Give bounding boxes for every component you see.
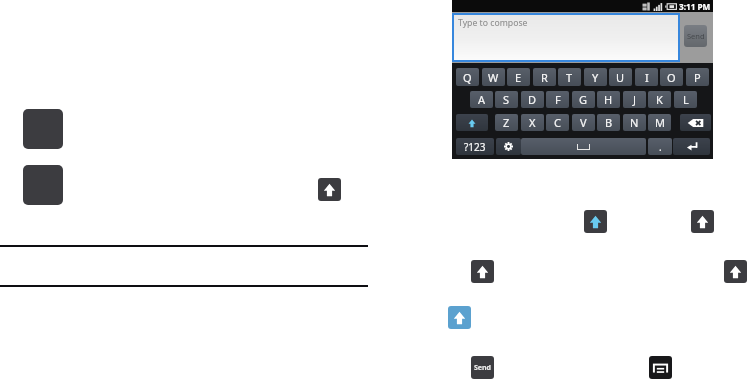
button[interactable]: Shift caps lock [448, 306, 471, 329]
staticText: U [616, 70, 625, 85]
button[interactable]: Show keyboard [649, 356, 672, 379]
staticText: Y [592, 70, 599, 85]
staticText: Send [687, 31, 705, 41]
staticText: G [579, 92, 588, 107]
staticText: C [554, 115, 561, 130]
button[interactable]: I [635, 68, 658, 86]
staticText: Send [474, 363, 492, 373]
staticText: . [659, 140, 662, 154]
button[interactable]: S [495, 91, 518, 108]
staticText: ?123 [464, 140, 486, 154]
button[interactable]: H [597, 91, 620, 108]
staticText: A [478, 92, 486, 107]
staticText: W [488, 70, 499, 85]
button[interactable]: K [648, 91, 671, 108]
button[interactable]: ?123 [456, 138, 494, 155]
staticText: J [633, 92, 637, 107]
button[interactable]: G [572, 91, 595, 108]
button[interactable]: E [507, 68, 530, 86]
button[interactable]: N [623, 114, 646, 131]
button[interactable]: T [558, 68, 581, 86]
button[interactable]: Send [471, 356, 494, 379]
button[interactable]: M [648, 114, 671, 131]
button[interactable]: Z [495, 114, 518, 131]
staticText: N [630, 115, 639, 130]
staticText: M [655, 115, 665, 130]
staticText: I [645, 70, 649, 85]
button[interactable]: Key background pressed [23, 165, 63, 205]
staticText: S [503, 92, 510, 107]
staticText: B [605, 115, 613, 130]
button[interactable]: Type to compose [454, 15, 678, 60]
button[interactable]: X [521, 114, 544, 131]
staticText: D [528, 92, 537, 107]
button[interactable]: Send [684, 25, 707, 47]
button[interactable]: W [482, 68, 505, 86]
staticText: F [555, 92, 561, 107]
button[interactable]: Input settings [496, 138, 521, 155]
staticText: X [529, 115, 536, 130]
staticText: Type to compose [458, 17, 528, 29]
button[interactable]: J [623, 91, 646, 108]
button[interactable]: F [546, 91, 569, 108]
button[interactable]: V [572, 114, 595, 131]
staticText: R [541, 70, 548, 85]
button[interactable]: Q [456, 68, 479, 86]
staticText: V [580, 115, 587, 130]
button[interactable]: A [470, 91, 493, 108]
button[interactable]: Space [521, 138, 646, 155]
staticText: 3:11 PM [679, 1, 711, 12]
button[interactable]: . [648, 138, 672, 155]
button[interactable]: Shift [471, 260, 494, 283]
staticText: Q [463, 70, 472, 85]
button[interactable]: O [660, 68, 683, 86]
staticText: K [656, 92, 663, 107]
button[interactable]: Shift [724, 260, 747, 283]
staticText: O [667, 70, 676, 85]
button[interactable]: Shift [318, 178, 341, 201]
staticText: H [604, 92, 613, 107]
button[interactable]: L [674, 91, 697, 108]
button[interactable]: C [546, 114, 569, 131]
staticText: E [515, 70, 522, 85]
button[interactable]: Key background [23, 109, 63, 149]
staticText: L [683, 92, 689, 107]
button[interactable]: Delete [680, 114, 711, 131]
button[interactable]: Shift [691, 210, 714, 233]
staticText: P [694, 70, 701, 85]
button[interactable]: Shift [584, 210, 607, 233]
button[interactable]: B [597, 114, 620, 131]
button[interactable]: R [533, 68, 556, 86]
button[interactable]: Shift [456, 114, 488, 131]
button[interactable]: Enter [673, 138, 710, 155]
button[interactable]: P [686, 68, 709, 86]
button[interactable]: U [609, 68, 632, 86]
staticText: Z [503, 115, 510, 130]
staticText: T [566, 70, 573, 85]
button[interactable]: D [521, 91, 544, 108]
button[interactable]: Y [584, 68, 607, 86]
